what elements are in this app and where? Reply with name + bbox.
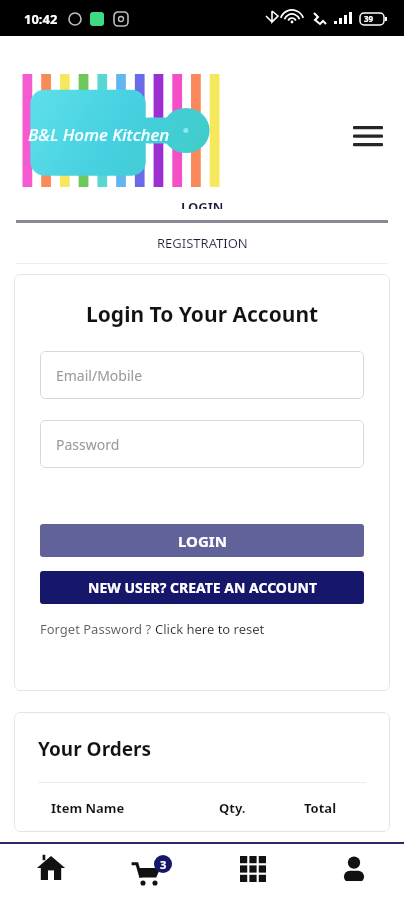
staticText: Login To Your Account — [86, 300, 319, 329]
staticText: Email/Mobile — [56, 366, 143, 385]
staticText: Total — [304, 799, 337, 817]
staticText: Forget Password ? — [40, 620, 155, 638]
button[interactable]: Password — [40, 420, 364, 468]
staticText: Your Orders — [38, 736, 152, 762]
button[interactable]: REGISTRATION — [0, 223, 404, 263]
staticText: NEW USER? CREATE AN ACCOUNT — [88, 578, 317, 597]
button[interactable]: NEW USER? CREATE AN ACCOUNT — [40, 571, 364, 604]
staticText: 39 — [364, 13, 374, 24]
button[interactable]: LOGIN — [40, 524, 364, 557]
button[interactable]: Cart, 3 items — [101, 844, 202, 900]
button[interactable]: Home — [0, 844, 101, 900]
button[interactable]: Account — [303, 844, 404, 900]
staticText: REGISTRATION — [157, 234, 248, 252]
button[interactable]: Email/Mobile — [40, 351, 364, 399]
staticText: B&L Home Kitchen — [28, 123, 170, 146]
staticText: Qty. — [219, 799, 246, 817]
staticText: Click here to reset — [155, 620, 265, 638]
button[interactable]: Forget Password ? — [40, 620, 265, 638]
staticText: Item Name — [51, 799, 125, 817]
button[interactable]: Menu — [344, 114, 392, 158]
staticText: 3 — [160, 857, 167, 872]
staticText: LOGIN — [178, 531, 227, 551]
button[interactable]: Categories — [202, 844, 303, 900]
staticText: 10:42 — [24, 10, 58, 28]
button[interactable]: LOGIN — [0, 194, 404, 214]
staticText: Password — [56, 435, 120, 454]
staticText: LOGIN — [181, 203, 224, 209]
